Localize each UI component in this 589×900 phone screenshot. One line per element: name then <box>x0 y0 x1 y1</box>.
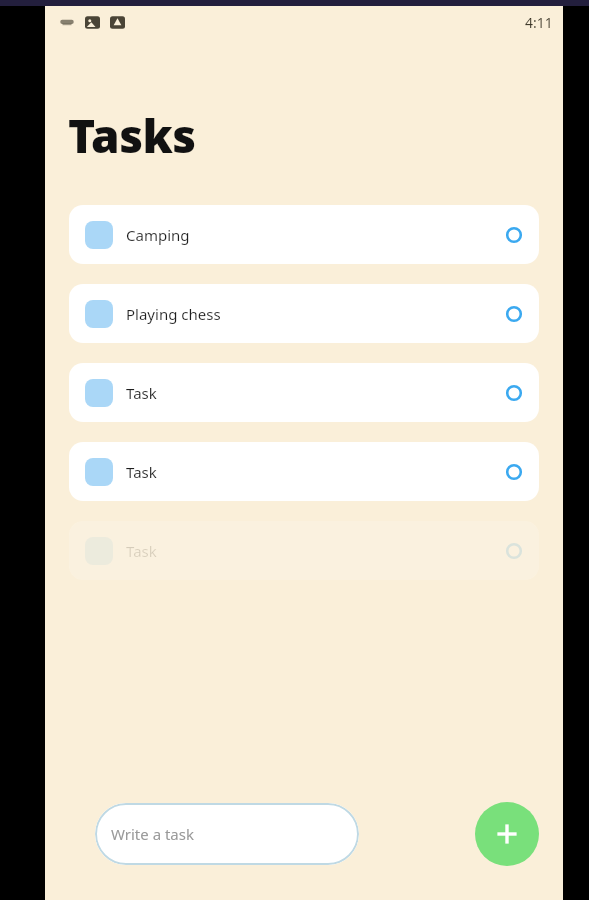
staticText: Task <box>126 541 157 561</box>
staticText: 4:11 <box>525 13 553 32</box>
button[interactable]: Mark Task complete <box>505 384 523 402</box>
staticText: Playing chess <box>126 304 221 324</box>
staticText: Tasks <box>68 104 196 167</box>
staticText: Task <box>126 462 157 482</box>
button[interactable]: Task <box>69 363 539 422</box>
button[interactable]: Playing chess <box>69 284 539 343</box>
button[interactable]: Task <box>69 521 539 580</box>
button[interactable]: Mark Playing chess complete <box>505 305 523 323</box>
button[interactable]: Mark Task complete <box>505 542 523 560</box>
button[interactable]: Mark Task complete <box>505 463 523 481</box>
staticText: Write a task <box>111 824 194 844</box>
staticText: Task <box>126 383 157 403</box>
button[interactable]: Camping <box>69 205 539 264</box>
staticText: Camping <box>126 225 190 245</box>
button[interactable]: Write a task <box>95 803 359 865</box>
button[interactable]: Mark Camping complete <box>505 226 523 244</box>
button[interactable]: Task <box>69 442 539 501</box>
button[interactable]: Add task <box>475 802 539 866</box>
